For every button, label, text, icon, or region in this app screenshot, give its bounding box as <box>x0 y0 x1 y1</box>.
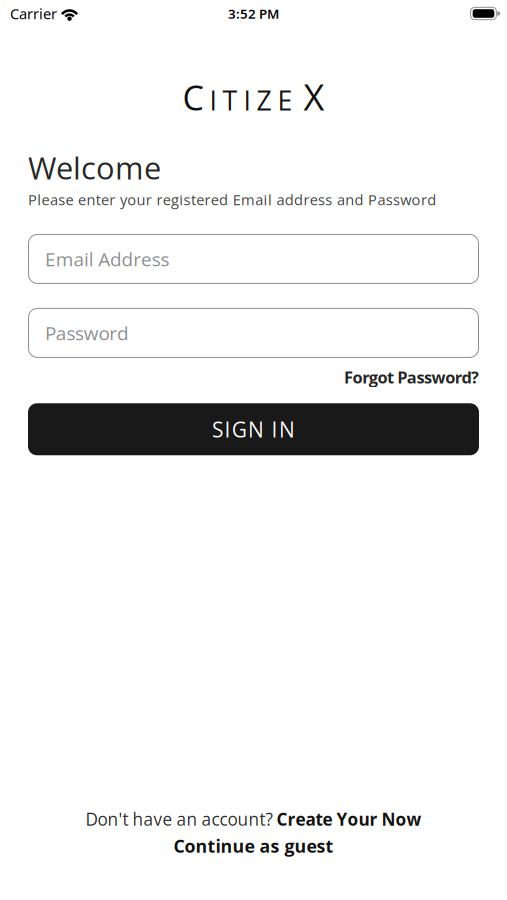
staticText: Please enter your registered Email addre… <box>28 189 436 209</box>
staticText: SIGN IN <box>212 415 295 443</box>
staticText: I <box>243 82 250 118</box>
staticText: X <box>303 72 324 121</box>
staticText: 3:52 PM <box>228 5 279 22</box>
staticText: T <box>222 82 237 118</box>
staticText: E <box>277 82 292 118</box>
button[interactable]: SIGN IN <box>28 403 479 455</box>
staticText: C <box>182 74 203 120</box>
button[interactable]: Create Your Now <box>276 807 421 831</box>
staticText: I <box>209 82 216 118</box>
button[interactable]: Continue as guest <box>173 834 333 858</box>
button[interactable]: Email Address <box>28 234 479 284</box>
staticText: Forgot Password? <box>344 366 479 388</box>
button[interactable]: Forgot Password? <box>344 366 479 388</box>
staticText: Z <box>256 82 271 118</box>
button[interactable]: Password <box>28 308 479 358</box>
staticText: Continue as guest <box>173 834 333 858</box>
staticText: Create Your Now <box>276 807 421 831</box>
staticText: Don't have an account? <box>85 807 276 831</box>
staticText: Welcome <box>28 146 161 188</box>
staticText: Password <box>45 320 129 346</box>
staticText: Email Address <box>45 246 169 272</box>
staticText: Carrier <box>10 4 57 23</box>
